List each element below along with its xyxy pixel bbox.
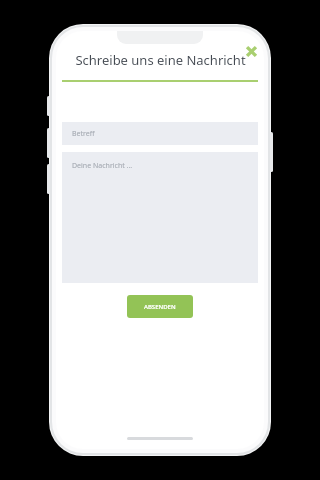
button[interactable]: ABSENDEN bbox=[127, 295, 193, 318]
staticText: Deine Nachricht ... bbox=[72, 161, 133, 171]
staticText: ABSENDEN bbox=[144, 303, 176, 311]
button[interactable]: Deine Nachricht ... bbox=[62, 152, 258, 283]
button[interactable]: Betreff bbox=[62, 122, 258, 145]
button[interactable]: Schließen bbox=[238, 38, 264, 64]
staticText: Schreibe uns eine Nachricht bbox=[75, 51, 246, 69]
staticText: Betreff bbox=[72, 129, 95, 139]
